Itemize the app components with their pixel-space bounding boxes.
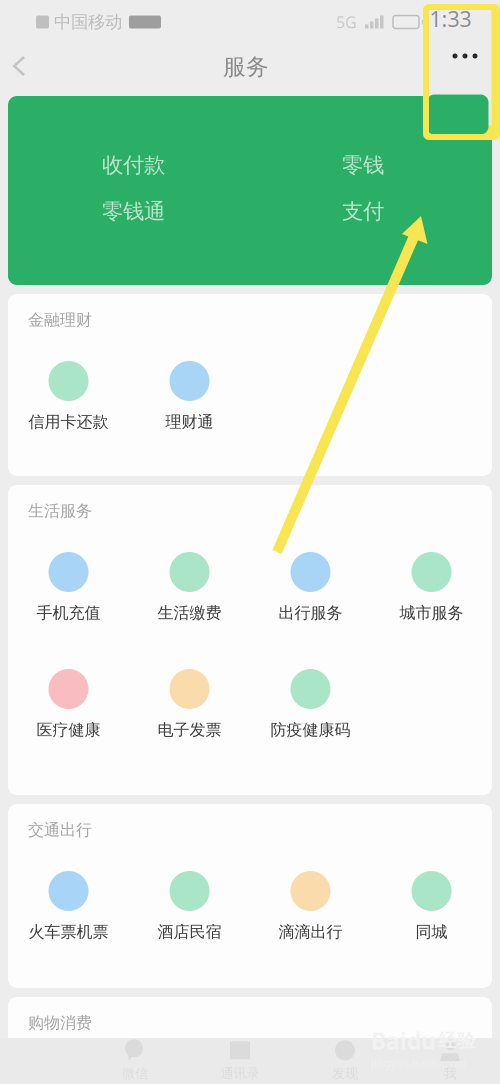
- staticText: jingyan.baidu.com: [371, 1056, 466, 1070]
- staticText: 生活服务: [28, 501, 92, 521]
- staticText: 生活缴费: [157, 603, 221, 623]
- staticText: 出行服务: [278, 603, 342, 623]
- staticText: 通讯录: [220, 1065, 259, 1082]
- staticText: 经验: [438, 1029, 476, 1052]
- staticText: 1:33: [429, 4, 471, 33]
- staticText: 发现: [332, 1065, 358, 1082]
- button[interactable]: 微信: [82, 1038, 187, 1084]
- button[interactable]: 通讯录: [187, 1038, 292, 1084]
- staticText: 同城: [415, 922, 447, 942]
- button[interactable]: Back: [0, 45, 46, 89]
- button[interactable]: 城市服务: [371, 537, 492, 654]
- staticText: 我: [443, 1065, 456, 1082]
- staticText: 火车票机票: [28, 922, 108, 942]
- button[interactable]: 滴滴出行: [250, 856, 371, 973]
- staticText: 滴滴出行: [278, 922, 342, 942]
- staticText: 电子发票: [157, 720, 221, 740]
- button[interactable]: 出行服务: [250, 537, 371, 654]
- staticText: 信用卡还款: [28, 412, 108, 432]
- staticText: 购物消费: [28, 1013, 92, 1033]
- button[interactable]: 信用卡还款: [8, 346, 129, 463]
- staticText: 理财通: [165, 412, 213, 432]
- staticText: 微信: [122, 1065, 148, 1082]
- button[interactable]: 生活缴费: [129, 537, 250, 654]
- button[interactable]: 酒店民宿: [129, 856, 250, 973]
- staticText: 零钱: [342, 152, 384, 178]
- staticText: 酒店民宿: [157, 922, 221, 942]
- staticText: 服务: [223, 53, 269, 81]
- button[interactable]: 同城: [371, 856, 492, 973]
- staticText: Baidu: [371, 1026, 436, 1056]
- button[interactable]: More: [426, 1, 491, 125]
- button[interactable]: 防疫健康码: [250, 654, 371, 771]
- staticText: 城市服务: [399, 603, 463, 623]
- staticText: 交通出行: [28, 820, 92, 840]
- button[interactable]: 手机充值: [8, 537, 129, 654]
- staticText: 金融理财: [28, 310, 92, 330]
- staticText: 支付: [342, 198, 384, 224]
- staticText: 手机充值: [36, 603, 100, 623]
- button[interactable]: 发现: [292, 1038, 397, 1084]
- staticText: 防疫健康码: [270, 720, 350, 740]
- staticText: 收付款: [102, 152, 165, 178]
- button[interactable]: 医疗健康: [8, 654, 129, 771]
- staticText: 医疗健康: [36, 720, 100, 740]
- button[interactable]: 我: [397, 1038, 500, 1084]
- button[interactable]: 理财通: [129, 346, 250, 463]
- staticText: 零钱通: [102, 198, 165, 224]
- staticText: 中国移动: [54, 11, 122, 33]
- button[interactable]: 电子发票: [129, 654, 250, 771]
- staticText: 5G: [336, 11, 357, 33]
- button[interactable]: 火车票机票: [8, 856, 129, 973]
